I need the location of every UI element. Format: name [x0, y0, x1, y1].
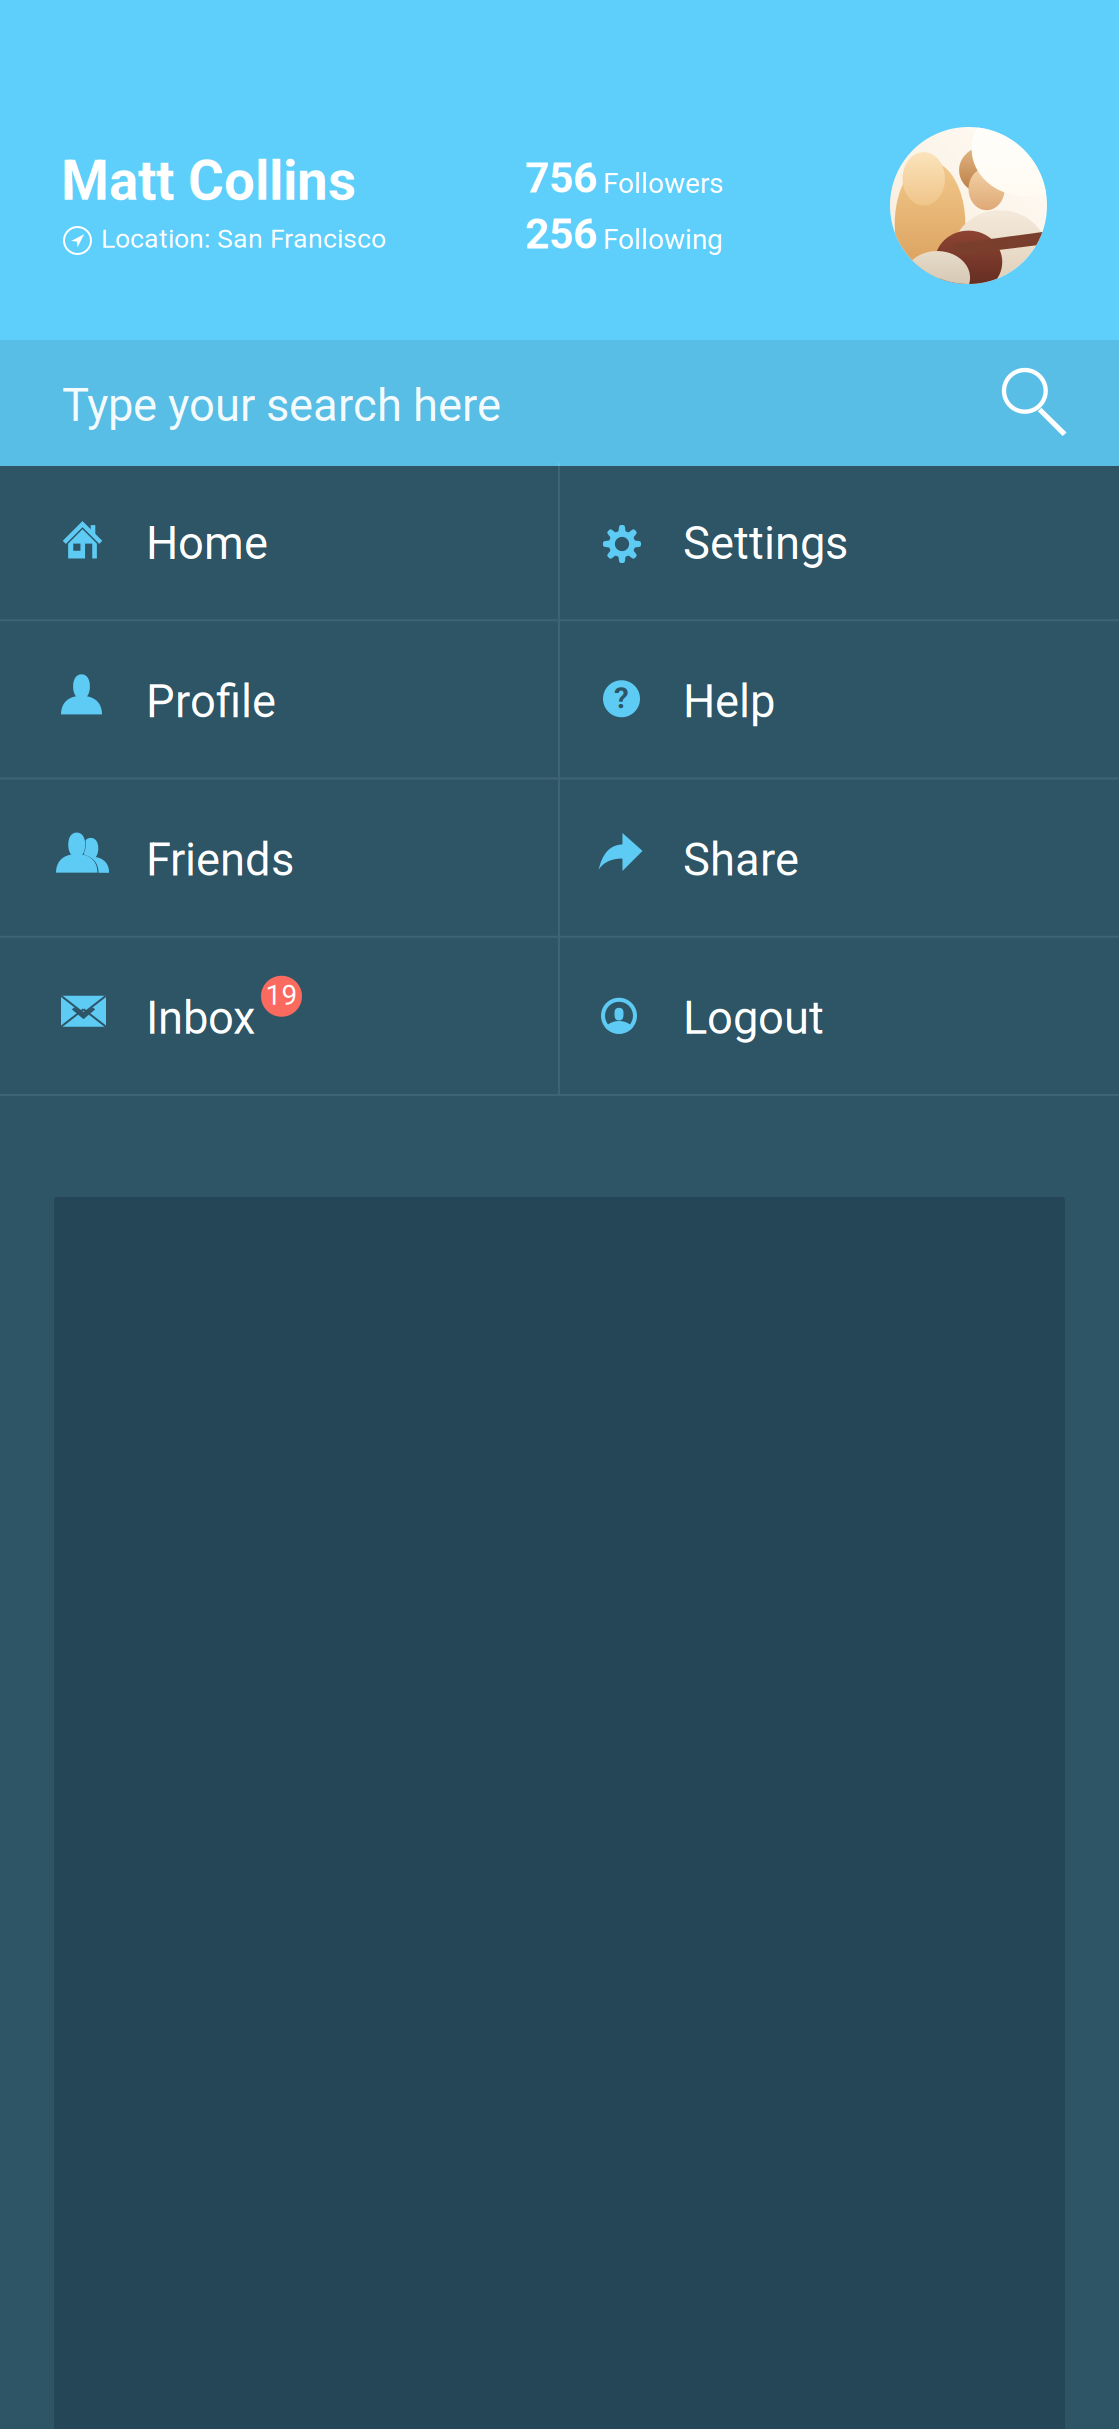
staticText: 756 — [525, 153, 597, 203]
staticText: Following — [603, 223, 723, 256]
staticText: Logout — [683, 992, 824, 1045]
staticText: 256 — [525, 209, 597, 259]
staticText: Home — [146, 517, 268, 570]
staticText: ? — [614, 681, 629, 715]
button[interactable]: Settings — [560, 463, 1119, 619]
staticText: Matt Collins — [61, 149, 356, 213]
button[interactable]: ? — [560, 621, 1119, 777]
staticText: Inbox — [146, 992, 255, 1045]
button[interactable]: Inbox — [0, 938, 558, 1094]
button[interactable]: Share — [560, 779, 1119, 936]
staticText: Profile — [146, 675, 276, 728]
staticText: Help — [683, 675, 775, 728]
staticText: Settings — [683, 517, 848, 570]
button[interactable]: Friends — [0, 779, 558, 936]
button[interactable]: Logout — [560, 938, 1119, 1094]
staticText: 19 — [265, 979, 297, 1012]
staticText: Share — [683, 833, 799, 887]
button[interactable]: Home — [0, 463, 558, 619]
staticText: Followers — [603, 167, 723, 200]
staticText: Type your search here — [62, 379, 501, 432]
button[interactable]: Search — [0, 340, 1119, 466]
staticText: Friends — [146, 833, 294, 887]
button[interactable]: Profile photo — [890, 127, 1047, 284]
button[interactable]: Profile — [0, 621, 558, 777]
staticText: Location: San Francisco — [101, 223, 386, 254]
